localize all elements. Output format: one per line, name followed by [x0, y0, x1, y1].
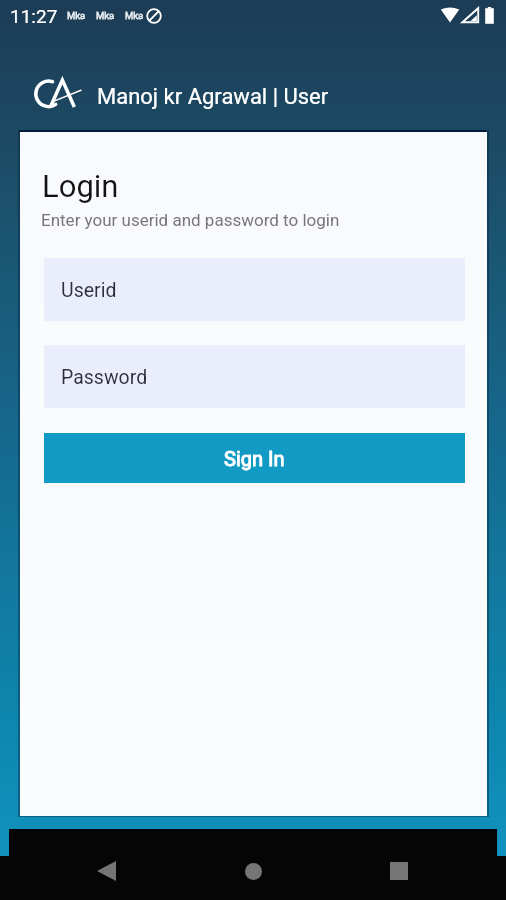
staticText: Userid — [61, 279, 117, 302]
button[interactable]: Password — [44, 345, 465, 408]
button[interactable]: Sign In — [44, 433, 465, 483]
staticText: Sign In — [224, 447, 285, 470]
staticText: Mka — [125, 10, 144, 21]
staticText: Mka — [67, 10, 86, 21]
staticText: Enter your userid and password to login — [41, 210, 340, 230]
button[interactable]: Recent apps — [379, 851, 419, 891]
staticText: Login — [42, 168, 119, 204]
button[interactable]: Userid — [44, 258, 465, 321]
staticText: Mka — [96, 10, 115, 21]
staticText: Password — [61, 366, 148, 389]
staticText: Manoj kr Agrawal | User — [97, 84, 329, 110]
staticText: 11:27 — [10, 5, 58, 27]
button[interactable]: Home — [233, 851, 273, 891]
button[interactable]: Back — [86, 851, 126, 891]
